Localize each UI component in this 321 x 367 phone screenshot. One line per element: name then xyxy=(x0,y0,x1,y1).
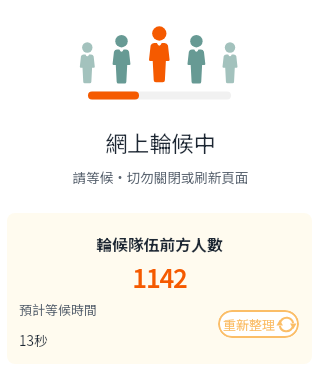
staticText: 網上輪候中 xyxy=(0,126,321,158)
staticText: 預計等候時間 xyxy=(19,300,98,319)
staticText: 1142 xyxy=(7,258,312,295)
staticText: 13秒 xyxy=(19,330,48,350)
staticText: 請等候‧切勿關閉或刷新頁面 xyxy=(0,167,321,187)
other: Refresh xyxy=(278,316,295,333)
staticText: 重新整理 xyxy=(223,315,276,334)
button[interactable]: 重新整理 xyxy=(218,310,299,338)
staticText: 輪候隊伍前方人數 xyxy=(7,233,312,256)
